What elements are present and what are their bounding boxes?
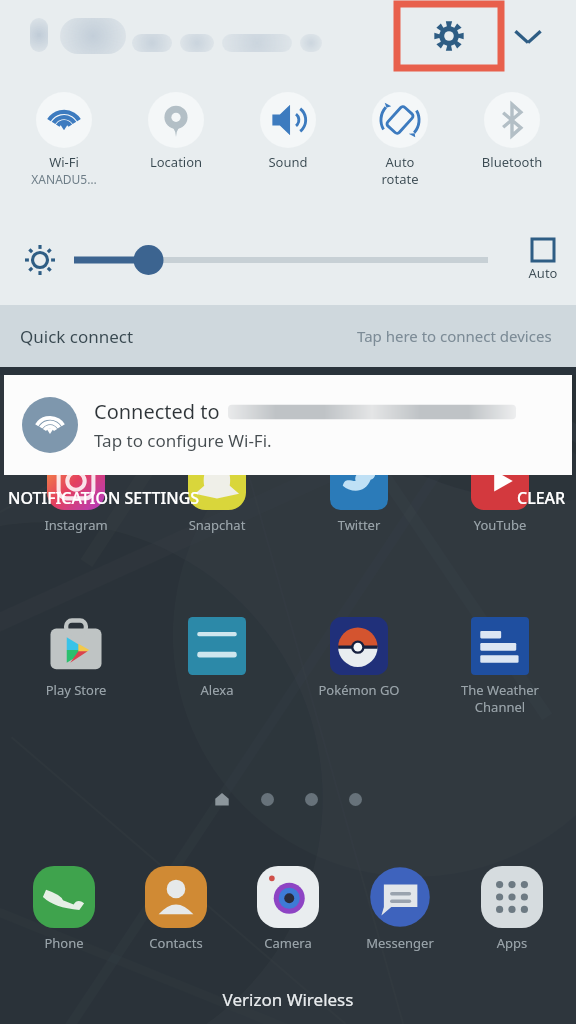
staticText: Auto xyxy=(510,264,576,282)
button[interactable]: Bluetooth xyxy=(458,92,566,171)
staticText: Quick connect xyxy=(20,325,134,348)
staticText: Apps xyxy=(458,934,566,952)
button[interactable]: Apps xyxy=(458,866,566,952)
staticText: The Weather Channel xyxy=(438,681,562,716)
button[interactable]: Expand xyxy=(500,8,556,64)
staticText: Auto rotate xyxy=(346,153,454,188)
button[interactable]: Location xyxy=(122,92,230,171)
staticText: Twitter xyxy=(297,516,421,534)
staticText: Messenger xyxy=(346,934,454,952)
button[interactable]: The Weather Channel xyxy=(438,617,562,716)
staticText: Tap to configure Wi-Fi. xyxy=(94,429,272,452)
button[interactable]: NOTIFICATION SETTINGS xyxy=(0,481,208,515)
button[interactable]: Brightness xyxy=(16,236,64,284)
staticText: Camera xyxy=(234,934,342,952)
button[interactable]: Wi-Fi xyxy=(10,92,118,187)
button[interactable]: Pokémon GO xyxy=(297,617,421,699)
button[interactable]: Phone xyxy=(10,866,118,952)
staticText: Pokémon GO xyxy=(297,681,421,699)
button[interactable]: Quick connect xyxy=(0,305,576,367)
button[interactable]: Twitter xyxy=(297,452,421,534)
staticText: Verizon Wireless xyxy=(0,988,576,1011)
staticText: YouTube xyxy=(438,516,562,534)
staticText: XANADU5… xyxy=(10,171,118,187)
staticText: Location xyxy=(122,153,230,171)
button[interactable]: Instagram xyxy=(14,452,138,534)
staticText: Tap here to connect devices xyxy=(357,326,552,346)
staticText: Instagram xyxy=(14,516,138,534)
button[interactable]: Auto rotate xyxy=(346,92,454,188)
button[interactable]: Play Store xyxy=(14,617,138,699)
button[interactable]: Alexa xyxy=(155,617,279,699)
staticText: Play Store xyxy=(14,681,138,699)
staticText: Snapchat xyxy=(155,516,279,534)
staticText: Wi-Fi xyxy=(10,153,118,171)
staticText: NOTIFICATION SETTINGS xyxy=(8,487,200,509)
staticText: Connected to xyxy=(94,398,220,425)
staticText: CLEAR xyxy=(517,487,566,509)
staticText: Sound xyxy=(234,153,342,171)
button[interactable]: Connected to xyxy=(4,375,572,475)
staticText: Phone xyxy=(10,934,118,952)
staticText: Bluetooth xyxy=(458,153,566,171)
button[interactable]: Messenger xyxy=(346,866,454,952)
button[interactable]: Camera xyxy=(234,866,342,952)
button[interactable]: YouTube xyxy=(438,452,562,534)
button[interactable]: Auto xyxy=(510,239,576,282)
button[interactable]: Contacts xyxy=(122,866,230,952)
button[interactable]: Settings xyxy=(397,4,501,68)
staticText: Contacts xyxy=(122,934,230,952)
button[interactable]: Sound xyxy=(234,92,342,171)
button[interactable]: CLEAR xyxy=(509,481,576,515)
staticText: Alexa xyxy=(155,681,279,699)
button[interactable] xyxy=(74,236,488,284)
button[interactable]: Snapchat xyxy=(155,452,279,534)
